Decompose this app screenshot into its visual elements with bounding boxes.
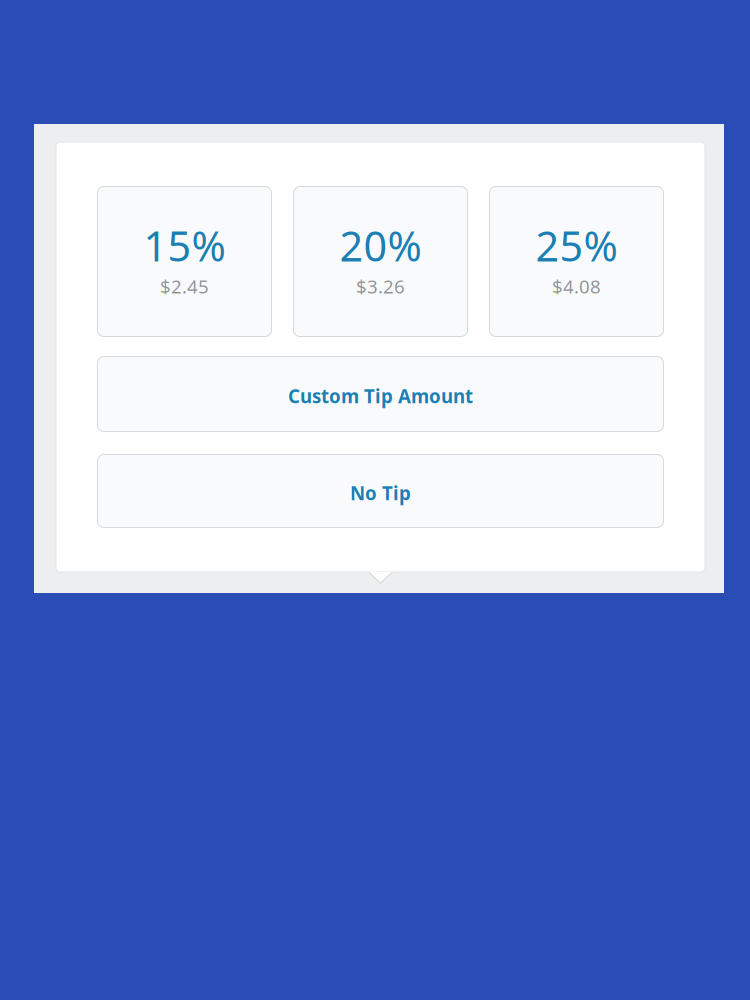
button[interactable]: No Tip: [97, 454, 664, 528]
button[interactable]: Custom Tip Amount: [97, 356, 664, 432]
staticText: $2.45: [160, 274, 209, 299]
staticText: Custom Tip Amount: [288, 384, 473, 408]
staticText: 25%: [535, 218, 617, 273]
staticText: 15%: [143, 218, 225, 273]
staticText: $3.26: [356, 274, 405, 299]
staticText: $4.08: [552, 274, 601, 299]
button[interactable]: 20% tip, $3.26: [293, 186, 468, 337]
button[interactable]: 15% tip, $2.45: [97, 186, 272, 337]
button[interactable]: 25% tip, $4.08: [489, 186, 664, 337]
staticText: 20%: [339, 218, 421, 273]
staticText: No Tip: [350, 481, 411, 505]
